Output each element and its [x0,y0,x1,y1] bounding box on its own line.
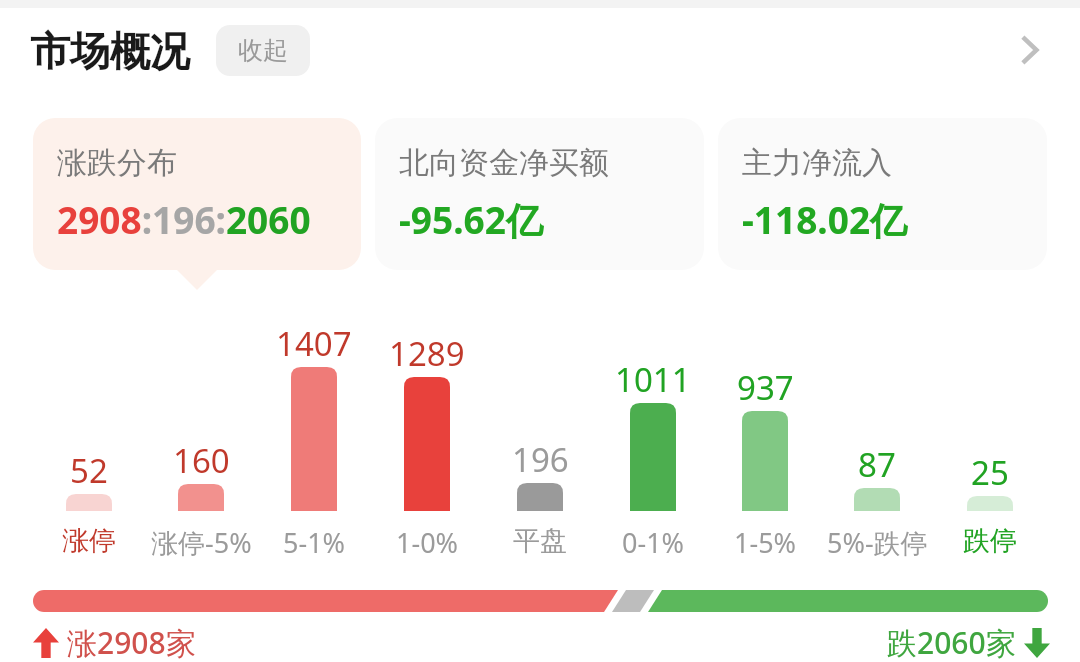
button[interactable]: 市场概况 [30,25,310,76]
button[interactable]: 跌2060家 [887,622,1050,662]
staticText: 52 [70,448,108,493]
staticText: 5%-跌停 [827,524,928,561]
staticText: 跌2060家 [887,622,1016,662]
staticText: 跌停 [963,524,1017,558]
button[interactable]: 主力净流入 [718,118,1047,270]
staticText: 937 [737,365,794,410]
staticText: 市场概况 [30,26,190,76]
staticText: 1-0% [396,524,459,561]
staticText: 5-1% [283,524,346,561]
staticText: 涨2908家 [67,622,196,662]
staticText: 0-1% [622,524,685,561]
staticText: -95.62亿 [399,194,543,245]
staticText: 涨停-5% [151,524,252,561]
staticText: 北向资金净买额 [399,144,609,182]
button[interactable]: More [1002,23,1056,77]
staticText: 主力净流入 [742,144,892,182]
staticText: 196 [512,437,569,482]
staticText: 1011 [615,357,691,402]
staticText: 2908:196:2060 [57,194,311,244]
button[interactable]: 涨跌分布 [33,118,361,270]
staticText: 收起 [238,35,288,66]
staticText: 160 [173,438,230,483]
staticText: 涨跌分布 [57,144,177,182]
staticText: -118.02亿 [742,194,908,245]
staticText: 1289 [389,331,465,376]
button[interactable]: 北向资金净买额 [375,118,704,270]
staticText: 1407 [276,321,352,366]
staticText: 25 [971,450,1009,495]
staticText: 1-5% [734,524,797,561]
button[interactable]: 涨2908家 [33,622,196,662]
staticText: 平盘 [513,524,567,558]
staticText: 87 [858,442,896,487]
staticText: 涨停 [62,524,116,558]
